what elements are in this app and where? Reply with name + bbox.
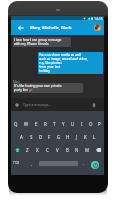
button[interactable]: K [81, 130, 90, 143]
staticText: T [53, 121, 56, 127]
button[interactable]: P [95, 117, 104, 130]
button[interactable]: M [82, 143, 92, 156]
button[interactable]: It's like having your own private party … [13, 83, 83, 93]
staticText: Mary [13, 80, 20, 84]
button[interactable]: , [27, 157, 35, 169]
button[interactable]: Backspace [92, 143, 104, 156]
button[interactable]: I [77, 117, 86, 130]
button[interactable]: D [36, 130, 45, 143]
button[interactable]: I love how I can group message with my i… [13, 37, 71, 47]
button[interactable]: H [63, 130, 72, 143]
staticText: E [35, 121, 38, 127]
button[interactable]: X [32, 143, 42, 156]
staticText: I love how I can group message with my i… [14, 38, 62, 46]
staticText: B [66, 147, 69, 153]
staticText: V [56, 147, 59, 153]
button[interactable]: A [16, 130, 26, 143]
button[interactable]: B [62, 143, 72, 156]
staticText: J [76, 134, 78, 140]
staticText: It's like having your own private party … [14, 84, 62, 92]
button[interactable]: F [45, 130, 54, 143]
staticText: N [75, 147, 79, 153]
staticText: K [84, 134, 87, 140]
staticText: U [71, 121, 75, 127]
staticText: Z [26, 147, 29, 153]
staticText: R [44, 121, 47, 127]
button[interactable]: You can share media as well such as imag… [38, 52, 103, 74]
staticText: X [36, 147, 39, 153]
staticText: A [20, 134, 23, 140]
button[interactable]: W [21, 117, 31, 130]
button[interactable]: Send [91, 161, 99, 169]
staticText: P [98, 121, 101, 127]
staticText: S [30, 134, 33, 140]
staticText: G [57, 134, 61, 140]
staticText: Q [14, 121, 18, 127]
button[interactable]: U [68, 117, 77, 130]
button[interactable]: S [26, 130, 36, 143]
staticText: Y [62, 121, 65, 127]
staticText: W [24, 121, 29, 127]
staticText: Mary, Michelle, Mark [30, 25, 72, 31]
button[interactable]: N [72, 143, 82, 156]
button[interactable]: Voice message [90, 101, 97, 108]
button[interactable]: V [52, 143, 62, 156]
button[interactable]: O [86, 117, 95, 130]
button[interactable]: Y [59, 117, 68, 130]
button[interactable]: Z [23, 143, 32, 156]
button[interactable]: R [41, 117, 50, 130]
staticText: L [93, 134, 96, 140]
staticText: 14:35 [94, 16, 103, 20]
staticText: . [83, 161, 84, 166]
staticText: H [66, 134, 70, 140]
staticText: I [81, 121, 83, 127]
button[interactable]: E [31, 117, 41, 130]
button[interactable]: L [90, 130, 99, 143]
staticText: F [48, 134, 51, 140]
button[interactable]: C [42, 143, 52, 156]
button[interactable]: G [54, 130, 63, 143]
staticText: , [31, 161, 32, 166]
button[interactable]: T [50, 117, 59, 130]
staticText: ?123 [13, 161, 20, 165]
button[interactable]: J [72, 130, 81, 143]
staticText: C [46, 147, 49, 153]
staticText: D [39, 134, 43, 140]
button[interactable]: Shift [11, 143, 23, 156]
staticText: You can share media as well such as imag… [39, 53, 88, 73]
staticText: O [89, 121, 93, 127]
button[interactable]: ?123 [12, 157, 21, 169]
button[interactable]: Q [11, 117, 21, 130]
staticText: Type a message... [23, 102, 52, 107]
button[interactable]: Back [15, 20, 26, 35]
button[interactable]: Contact photo [94, 24, 101, 31]
staticText: M [85, 147, 89, 153]
button[interactable]: Add attachment [13, 101, 20, 108]
button[interactable]: . [79, 157, 87, 169]
